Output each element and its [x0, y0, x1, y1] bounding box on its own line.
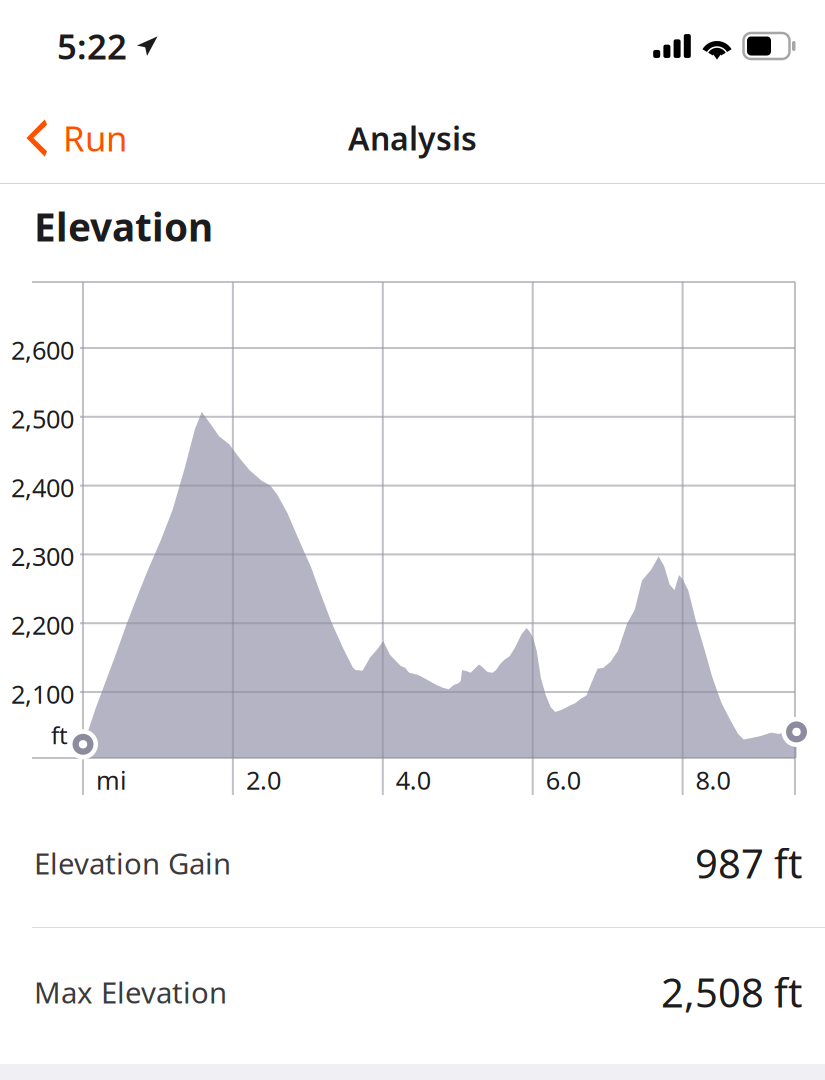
staticText: 2.0 [246, 763, 281, 797]
staticText: 2,500 [11, 402, 74, 435]
staticText: Elevation Gain [34, 843, 231, 882]
staticText: 6.0 [546, 763, 581, 797]
staticText: 8.0 [696, 763, 731, 797]
staticText: 2,600 [11, 333, 74, 367]
staticText: mi [96, 763, 127, 797]
staticText: Elevation [34, 201, 213, 252]
staticText: 2,508 ft [661, 965, 802, 1018]
button[interactable]: Max Elevation [0, 928, 825, 1056]
button[interactable]: Run [0, 92, 143, 184]
staticText: 987 ft [695, 836, 802, 889]
staticText: Analysis [348, 117, 477, 159]
staticText: ft [51, 719, 68, 751]
staticText: 2,100 [11, 677, 74, 711]
staticText: 2,300 [11, 539, 74, 573]
button[interactable]: Elevation Gain [0, 799, 825, 927]
staticText: Run [63, 115, 127, 161]
staticText: 4.0 [396, 763, 431, 797]
staticText: 2,400 [11, 471, 74, 504]
staticText: 5:22 [57, 23, 127, 69]
staticText: 2,200 [11, 608, 74, 642]
staticText: Max Elevation [34, 972, 227, 1011]
